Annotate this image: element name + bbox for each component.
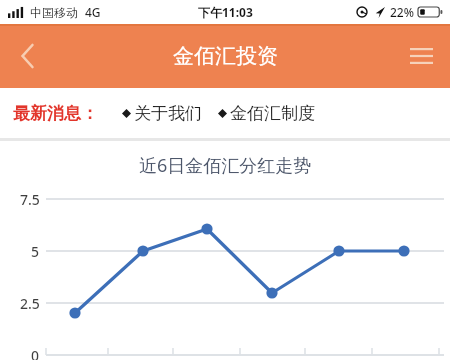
staticText: 金佰汇投资 [173,43,278,69]
button[interactable]: 关于我们 [122,99,202,128]
staticText: 0 [31,346,40,360]
staticText: 2.5 [20,294,40,312]
staticText: 4G [85,4,101,20]
staticText: 22% [390,4,414,20]
staticText: 5 [31,242,40,260]
staticText: 关于我们 [134,103,202,124]
button[interactable]: Back [6,35,48,77]
staticText: 7.5 [20,190,40,208]
button[interactable]: Menu [400,35,442,77]
staticText: 近6日金佰汇分红走势 [139,153,312,178]
staticText: 金佰汇制度 [230,103,315,124]
staticText: 下午11:03 [198,4,253,20]
button[interactable]: 金佰汇制度 [218,99,315,128]
staticText: 中国移动 [30,5,78,20]
staticText: 最新消息： [13,103,98,124]
